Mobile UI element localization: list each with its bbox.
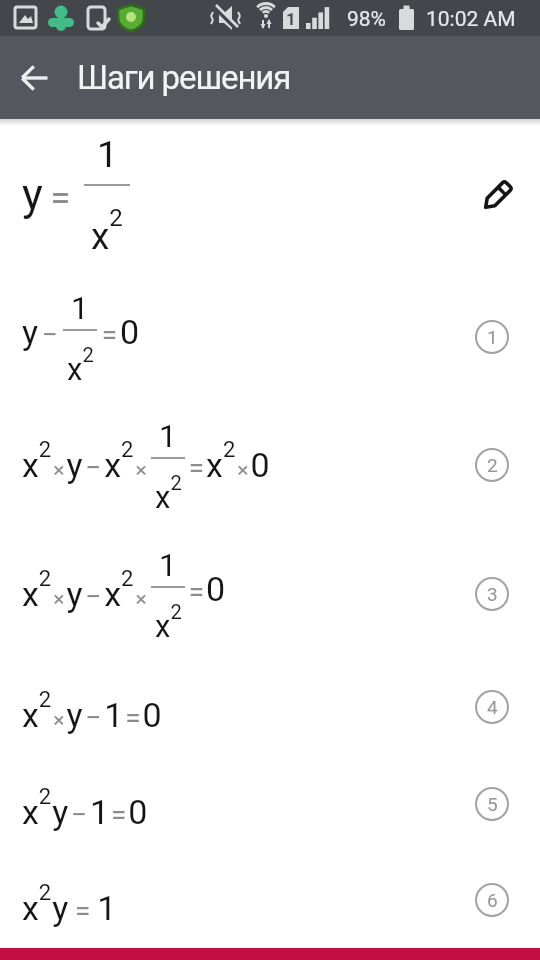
button[interactable] xyxy=(479,178,515,214)
staticText: 10:02 AM xyxy=(426,7,516,32)
staticText: 1 xyxy=(286,9,296,29)
staticText: 2 xyxy=(487,454,498,476)
staticText: x2 xyxy=(91,204,123,258)
button[interactable]: x2 × y − x2 × xyxy=(0,411,540,519)
button[interactable]: 5 xyxy=(475,787,509,821)
staticText: x2 xyxy=(155,471,182,516)
button[interactable]: x2 y = 1 xyxy=(0,864,540,936)
button[interactable]: y − xyxy=(0,283,540,391)
staticText: 1 xyxy=(487,326,498,348)
button[interactable]: 3 xyxy=(475,577,509,611)
staticText: x2 xyxy=(67,343,94,388)
staticText: 1 xyxy=(159,418,177,454)
staticText: x2 × y − 1 = 0 xyxy=(22,686,162,735)
staticText: 6 xyxy=(487,889,498,911)
staticText: y = xyxy=(22,159,84,223)
button[interactable]: 4 xyxy=(475,690,509,724)
staticText: 3 xyxy=(487,583,498,605)
button[interactable]: x2 y − 1 = 0 xyxy=(0,768,540,840)
staticText: x2 × y − x2 × xyxy=(22,436,151,485)
staticText: 1 xyxy=(71,290,89,326)
button[interactable] xyxy=(21,64,49,92)
staticText: = x2 × 0 xyxy=(185,436,270,485)
staticText: = 0 xyxy=(97,312,140,352)
staticText: 1 xyxy=(159,547,177,583)
staticText: 1 xyxy=(97,133,118,176)
button[interactable]: 2 xyxy=(475,448,509,482)
staticText: y − xyxy=(22,312,63,352)
staticText: 98% xyxy=(347,7,386,32)
staticText: 5 xyxy=(487,793,498,815)
staticText: x2 xyxy=(155,600,182,645)
staticText: 4 xyxy=(487,696,498,718)
staticText: = 0 xyxy=(185,569,226,609)
button[interactable]: x2 × y − 1 = 0 xyxy=(0,671,540,743)
button[interactable]: y = xyxy=(0,132,540,258)
button[interactable]: x2 × y − x2 × xyxy=(0,540,540,648)
staticText: x2 y − 1 = 0 xyxy=(22,783,148,832)
staticText: x2 y = 1 xyxy=(22,879,117,928)
staticText: x2 × y − x2 × xyxy=(22,565,151,614)
staticText: Шаги решения xyxy=(77,58,291,97)
button[interactable]: 1 xyxy=(475,320,509,354)
button[interactable]: 6 xyxy=(475,883,509,917)
